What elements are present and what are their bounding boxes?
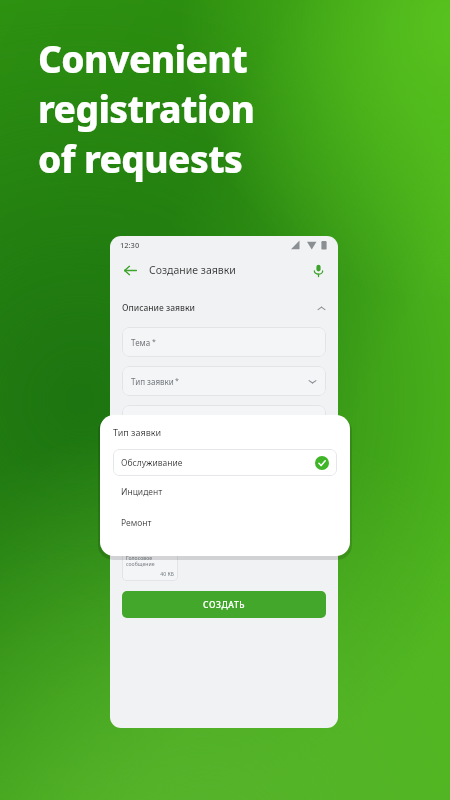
button[interactable]: СОЗДАТЬ (122, 591, 326, 618)
staticText: 40 КБ (126, 570, 174, 577)
staticText: Convenient (38, 33, 248, 83)
staticText: Обслуживание (121, 457, 183, 469)
staticText: * (175, 376, 179, 386)
button[interactable] (122, 405, 326, 439)
button[interactable]: Тип заявки (122, 366, 326, 396)
button[interactable]: Тема (122, 327, 326, 357)
staticText: Голосовое сообщение (126, 554, 174, 568)
staticText: * (152, 337, 156, 347)
staticText: Тип заявки (131, 376, 174, 387)
staticText: Описание заявки (131, 455, 199, 466)
staticText: Прикрепить (122, 516, 170, 527)
staticText: Тип заявки (113, 426, 162, 438)
button[interactable]: Обслуживание (113, 449, 337, 476)
staticText: Ремонт (121, 517, 152, 529)
button[interactable]: Описание заявки (122, 298, 326, 318)
button[interactable]: Описание заявки (122, 448, 326, 494)
staticText: 12:30 (120, 240, 140, 250)
staticText: registration (38, 83, 255, 133)
staticText: Тема (131, 337, 151, 348)
button[interactable]: Инцидент (113, 476, 337, 507)
staticText: of requests (38, 133, 243, 183)
button[interactable]: Voice input (308, 260, 328, 280)
button[interactable]: Back (120, 260, 140, 280)
staticText: Создание заявки (149, 263, 236, 277)
staticText: Описание заявки (122, 302, 196, 314)
staticText: Инцидент (121, 486, 163, 498)
button[interactable]: Ремонт (113, 507, 337, 538)
button[interactable]: Голосовое сообщение (122, 537, 178, 581)
staticText: СОЗДАТЬ (203, 599, 246, 611)
